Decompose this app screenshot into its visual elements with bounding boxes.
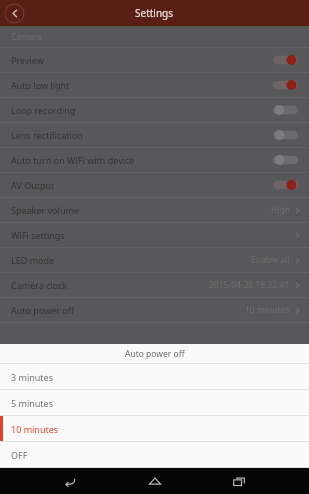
staticText: LED mode bbox=[11, 254, 251, 266]
staticText: Enable all bbox=[251, 254, 290, 266]
button[interactable]: Camera clock bbox=[0, 273, 309, 297]
staticText: Camera bbox=[11, 31, 42, 43]
button[interactable]: Home bbox=[140, 468, 170, 494]
staticText: 10 minutes bbox=[11, 423, 59, 435]
button[interactable]: Loop recording bbox=[0, 98, 309, 122]
button[interactable]: Auto turn on WiFi with device bbox=[0, 148, 309, 172]
staticText: Speaker volume bbox=[11, 204, 271, 216]
staticText: Auto turn on WiFi with device bbox=[11, 154, 273, 166]
staticText: 5 minutes bbox=[11, 397, 53, 409]
staticText: 3 minutes bbox=[11, 371, 53, 383]
button[interactable]: 3 minutes bbox=[0, 364, 309, 389]
staticText: 10 minutes bbox=[245, 304, 290, 316]
button[interactable]: Recent apps bbox=[224, 468, 254, 494]
staticText: Auto power off bbox=[125, 348, 185, 360]
button[interactable]: LED mode bbox=[0, 248, 309, 272]
staticText: Loop recording bbox=[11, 104, 273, 116]
button[interactable]: WiFi settings bbox=[0, 223, 309, 247]
staticText: Auto low light bbox=[11, 79, 273, 91]
button[interactable]: Auto power off bbox=[0, 298, 309, 322]
staticText: 2015-04-28 18:32:41 bbox=[209, 279, 290, 291]
button[interactable]: AV Output bbox=[0, 173, 309, 197]
staticText: High bbox=[271, 204, 290, 216]
button[interactable]: Back bbox=[4, 3, 25, 24]
button[interactable]: 10 minutes bbox=[0, 416, 309, 441]
staticText: AV Output bbox=[11, 179, 273, 191]
staticText: Lens rectification bbox=[11, 129, 273, 141]
staticText: Auto power off bbox=[11, 304, 245, 316]
button[interactable]: Back bbox=[55, 468, 85, 494]
button[interactable]: OFF bbox=[0, 442, 309, 467]
staticText: WiFi settings bbox=[11, 229, 294, 241]
button[interactable]: Auto low light bbox=[0, 73, 309, 97]
button[interactable]: Lens rectification bbox=[0, 123, 309, 147]
staticText: Settings bbox=[135, 6, 174, 20]
staticText: Camera clock bbox=[11, 279, 209, 291]
button[interactable]: Preview bbox=[0, 48, 309, 72]
button[interactable]: 5 minutes bbox=[0, 390, 309, 415]
button[interactable]: Speaker volume bbox=[0, 198, 309, 222]
staticText: OFF bbox=[11, 449, 28, 461]
staticText: Preview bbox=[11, 54, 273, 66]
